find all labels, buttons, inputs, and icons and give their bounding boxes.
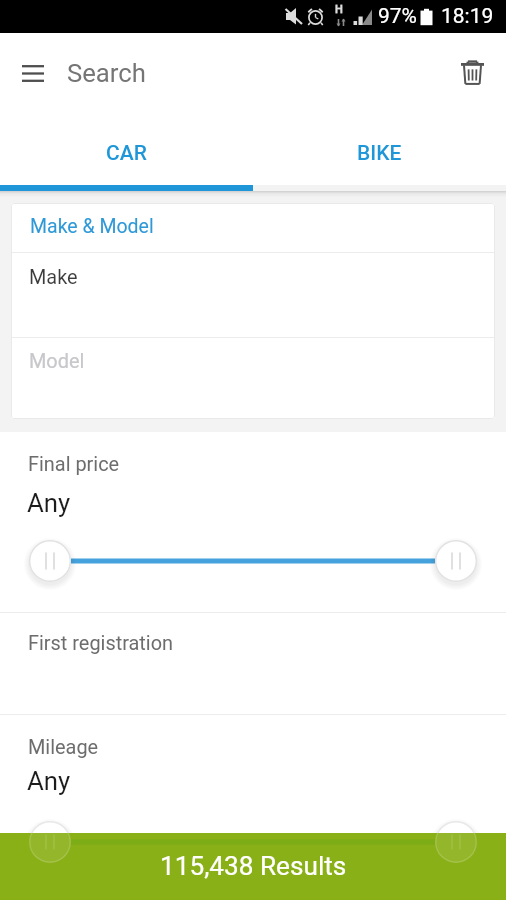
button[interactable]: Delete saved search <box>448 49 496 97</box>
staticText: 115,438 Results <box>160 851 347 882</box>
button[interactable]: Open navigation menu <box>9 49 57 97</box>
staticText: H <box>335 3 343 16</box>
staticText: Make & Model <box>30 215 154 238</box>
button[interactable]: Range slider <box>0 531 506 591</box>
button[interactable]: CAR <box>0 112 253 185</box>
button[interactable]: Final price <box>0 432 506 612</box>
staticText: 97% <box>378 4 417 29</box>
staticText: Any <box>27 766 71 796</box>
staticText: BIKE <box>357 141 402 166</box>
staticText: Search <box>67 58 146 88</box>
button[interactable]: Make <box>11 253 495 337</box>
staticText: CAR <box>106 141 147 166</box>
button[interactable]: Mileage <box>0 715 506 900</box>
staticText: Make <box>29 266 78 289</box>
button[interactable]: Make & Model <box>11 203 495 252</box>
staticText: 18:19 <box>441 4 494 29</box>
button[interactable]: First registration <box>0 613 506 714</box>
button[interactable]: Range slider <box>0 812 506 872</box>
staticText: Model <box>29 350 85 373</box>
staticText: Any <box>27 488 71 518</box>
button[interactable]: Model <box>11 338 495 419</box>
staticText: Mileage <box>28 736 99 759</box>
button[interactable]: 115,438 Results <box>0 833 506 900</box>
staticText: Final price <box>28 453 120 476</box>
button[interactable]: BIKE <box>253 112 506 185</box>
staticText: First registration <box>28 632 174 655</box>
